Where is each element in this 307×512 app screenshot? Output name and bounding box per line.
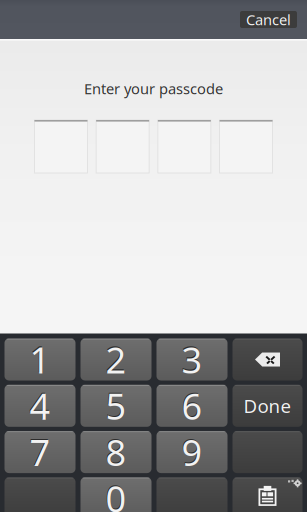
staticText: Cancel xyxy=(246,10,291,29)
button[interactable]: 8 xyxy=(80,431,151,473)
button[interactable]: Paste xyxy=(232,477,302,512)
staticText: 9 xyxy=(181,427,202,475)
staticText: 2 xyxy=(105,334,126,382)
staticText: 3 xyxy=(181,336,202,383)
button[interactable]: Cancel xyxy=(240,11,297,28)
staticText: 7 xyxy=(29,427,50,475)
staticText: 6 xyxy=(181,381,202,429)
button[interactable]: Delete xyxy=(232,338,302,380)
button[interactable]: 3 xyxy=(156,338,227,380)
button[interactable]: 0 xyxy=(80,477,151,512)
staticText: 1 xyxy=(29,336,50,383)
staticText: 0 xyxy=(105,473,126,512)
button[interactable]: 9 xyxy=(156,431,227,473)
button[interactable]: 1 xyxy=(4,338,75,380)
button[interactable]: 5 xyxy=(80,385,151,427)
staticText: 9 xyxy=(181,428,202,476)
staticText: Done xyxy=(243,393,291,418)
staticText: 2 xyxy=(105,336,126,383)
staticText: 3 xyxy=(181,334,202,382)
button[interactable]: 2 xyxy=(80,338,151,380)
button[interactable]: 4 xyxy=(4,385,75,427)
staticText: 7 xyxy=(29,428,50,476)
staticText: 5 xyxy=(105,381,126,429)
button[interactable]: 7 xyxy=(4,431,75,473)
staticText: 1 xyxy=(29,334,50,382)
button[interactable]: Done xyxy=(232,385,302,427)
staticText: 0 xyxy=(105,474,126,512)
staticText: 4 xyxy=(29,381,50,429)
button[interactable]: 6 xyxy=(156,385,227,427)
staticText: 4 xyxy=(29,382,50,430)
staticText: 8 xyxy=(105,428,126,476)
staticText: Enter your passcode xyxy=(84,79,223,98)
staticText: 5 xyxy=(105,382,126,430)
staticText: 8 xyxy=(105,427,126,475)
staticText: 6 xyxy=(181,382,202,430)
